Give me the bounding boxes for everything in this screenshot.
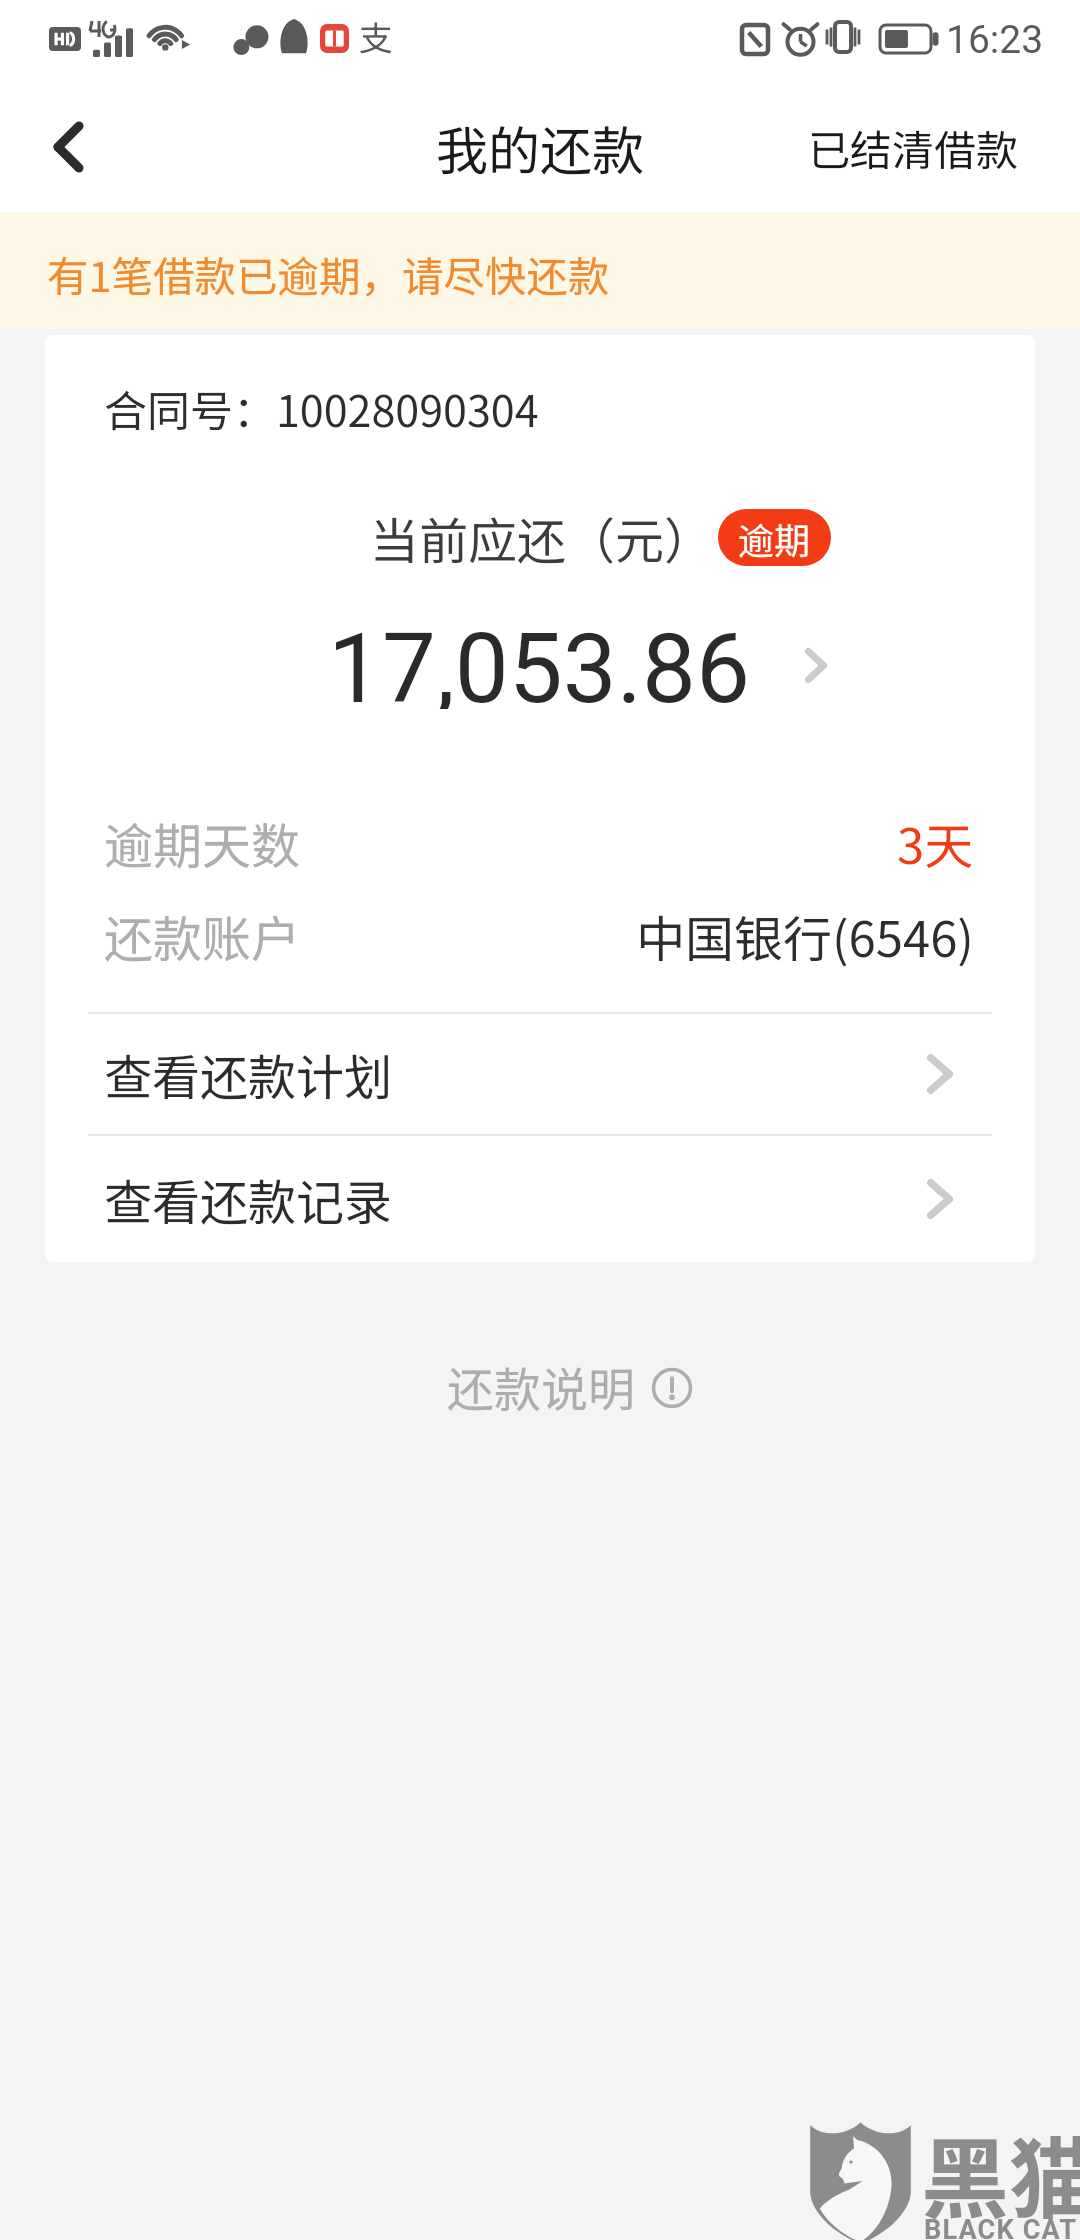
- staticText: 支: [359, 12, 393, 61]
- staticText: 3天: [897, 807, 974, 878]
- button[interactable]: 查看还款计划: [45, 1014, 1035, 1134]
- staticText: 逾期天数: [104, 807, 301, 878]
- button[interactable]: Back: [0, 96, 150, 212]
- staticText: 17,053.86: [328, 613, 750, 709]
- staticText: 还款说明: [447, 1352, 635, 1412]
- staticText: 还款账户: [104, 900, 301, 971]
- staticText: 查看还款计划: [104, 1039, 393, 1109]
- staticText: 16:23: [946, 17, 1044, 63]
- staticText: BLACK CAT: [924, 2214, 1078, 2240]
- button[interactable]: 还款说明: [447, 1358, 693, 1418]
- staticText: 我的还款: [436, 110, 645, 185]
- button[interactable]: 17,053.86: [45, 612, 1035, 708]
- button[interactable]: 已结清借款: [778, 89, 1080, 205]
- staticText: 中国银行(6546): [636, 900, 974, 971]
- staticText: 有1笔借款已逾期，请尽快还款: [47, 244, 610, 304]
- staticText: 合同号：10028090304: [104, 377, 539, 439]
- button[interactable]: 查看还款记录: [45, 1136, 1035, 1262]
- staticText: 当前应还（元）: [370, 502, 714, 572]
- staticText: 查看还款记录: [104, 1164, 393, 1234]
- staticText: 已结清借款: [808, 117, 1019, 178]
- staticText: 黑猫: [921, 2109, 1080, 2236]
- staticText: 逾期: [738, 512, 811, 564]
